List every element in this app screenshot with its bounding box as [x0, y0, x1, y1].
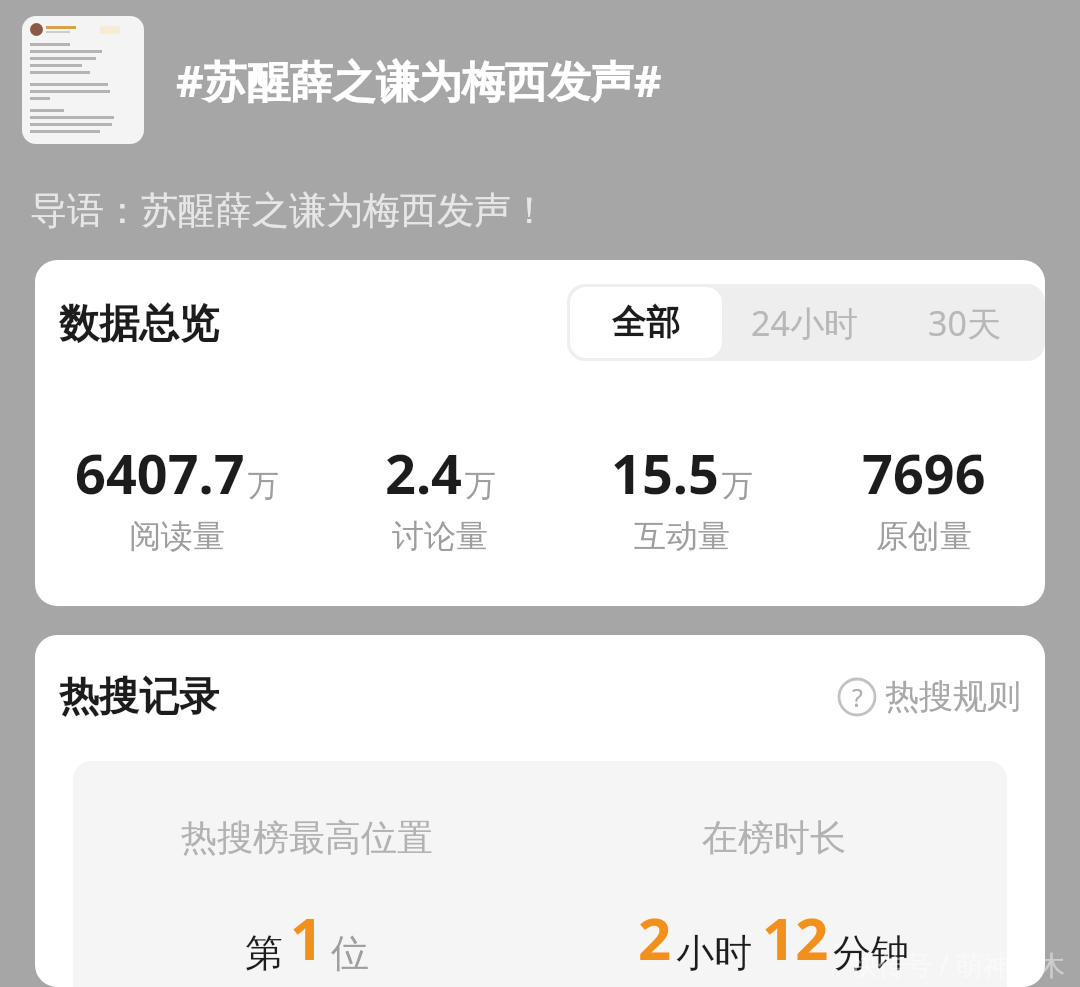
button[interactable]: 6407.7 — [35, 436, 319, 556]
staticText: 快传号 / 萌神 木 — [851, 946, 1066, 983]
button[interactable]: 30天 — [883, 287, 1045, 358]
button[interactable]: 在榜时长 — [540, 815, 1007, 977]
staticText: 位 — [331, 929, 369, 977]
staticText: 6407.7 — [75, 436, 245, 510]
button[interactable]: 2.4 — [319, 436, 561, 556]
staticText: 讨论量 — [392, 516, 488, 556]
button[interactable]: 15.5 — [561, 436, 803, 556]
staticText: 原创量 — [876, 516, 972, 556]
staticText: 热搜记录 — [59, 671, 219, 721]
button[interactable]: 热搜榜最高位置 — [73, 815, 540, 977]
staticText: 在榜时长 — [702, 815, 846, 860]
button[interactable]: 热搜规则 — [837, 675, 1021, 718]
staticText: 互动量 — [634, 516, 730, 556]
staticText: 2 — [638, 898, 672, 977]
staticText: 万 — [248, 466, 279, 505]
staticText: 阅读量 — [129, 516, 225, 556]
staticText: 热搜榜最高位置 — [181, 815, 433, 860]
staticText: 24小时 — [751, 300, 858, 346]
staticText: 热搜规则 — [885, 675, 1021, 718]
staticText: ? — [852, 680, 863, 714]
staticText: 万 — [465, 466, 496, 505]
staticText: 导语：苏醒薛之谦为梅西发声！ — [30, 187, 548, 234]
staticText: 第 — [245, 929, 283, 977]
staticText: 1 — [290, 898, 324, 977]
staticText: 2.4 — [385, 436, 462, 510]
staticText: 小时 — [676, 929, 752, 977]
button[interactable]: 24小时 — [725, 287, 883, 358]
staticText: 7696 — [862, 436, 986, 510]
button[interactable]: 原帖截图 — [22, 16, 144, 144]
button[interactable]: 全部 — [570, 287, 722, 358]
staticText: #苏醒薛之谦为梅西发声# — [176, 51, 662, 110]
staticText: 全部 — [612, 301, 680, 344]
staticText: 12 — [762, 898, 829, 977]
button[interactable]: 7696 — [803, 436, 1045, 556]
staticText: 15.5 — [611, 436, 719, 510]
staticText: 30天 — [928, 300, 1001, 346]
staticText: 万 — [722, 466, 753, 505]
staticText: 分钟 — [833, 929, 909, 977]
staticText: 数据总览 — [59, 298, 219, 348]
